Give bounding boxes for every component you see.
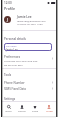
- staticText: Settings: [4, 97, 16, 101]
- button[interactable]: Profile: [42, 101, 56, 117]
- button[interactable]: J: [2, 13, 56, 25]
- staticText: Tools: [4, 73, 12, 77]
- staticText: Phone Number: [4, 81, 25, 85]
- button[interactable]: Search: [2, 101, 15, 117]
- button[interactable]: Preferences: [2, 54, 56, 66]
- button[interactable]: Full name: [4, 43, 52, 51]
- staticText: Personal details: [4, 37, 26, 41]
- button[interactable]: Phone Number: [2, 79, 56, 85]
- staticText: Search: [5, 110, 12, 113]
- staticText: SIMS Fixed Data: [4, 87, 26, 91]
- staticText: we use your data: [4, 64, 23, 67]
- staticText: Profile: [46, 110, 53, 113]
- staticText: Profile: [4, 6, 16, 11]
- staticText: Full name: [6, 45, 17, 48]
- staticText: Customise your alerts and how: [4, 60, 38, 63]
- staticText: 12:00: [4, 1, 12, 5]
- staticText: Jamie Lee: [17, 15, 32, 19]
- button[interactable]: Saved: [28, 101, 42, 117]
- staticText: J: [7, 17, 9, 23]
- button[interactable]: SIMS Fixed Data: [2, 85, 56, 91]
- staticText: Saved: [32, 110, 38, 113]
- staticText: Explore: [18, 110, 26, 113]
- staticText: Account ID 4821 1290: [17, 22, 43, 25]
- button[interactable]: Explore: [15, 101, 28, 117]
- staticText: jamie.lee@example.com: [17, 19, 46, 22]
- staticText: Jamie Lee: [6, 48, 18, 52]
- staticText: Preferences: [4, 55, 21, 59]
